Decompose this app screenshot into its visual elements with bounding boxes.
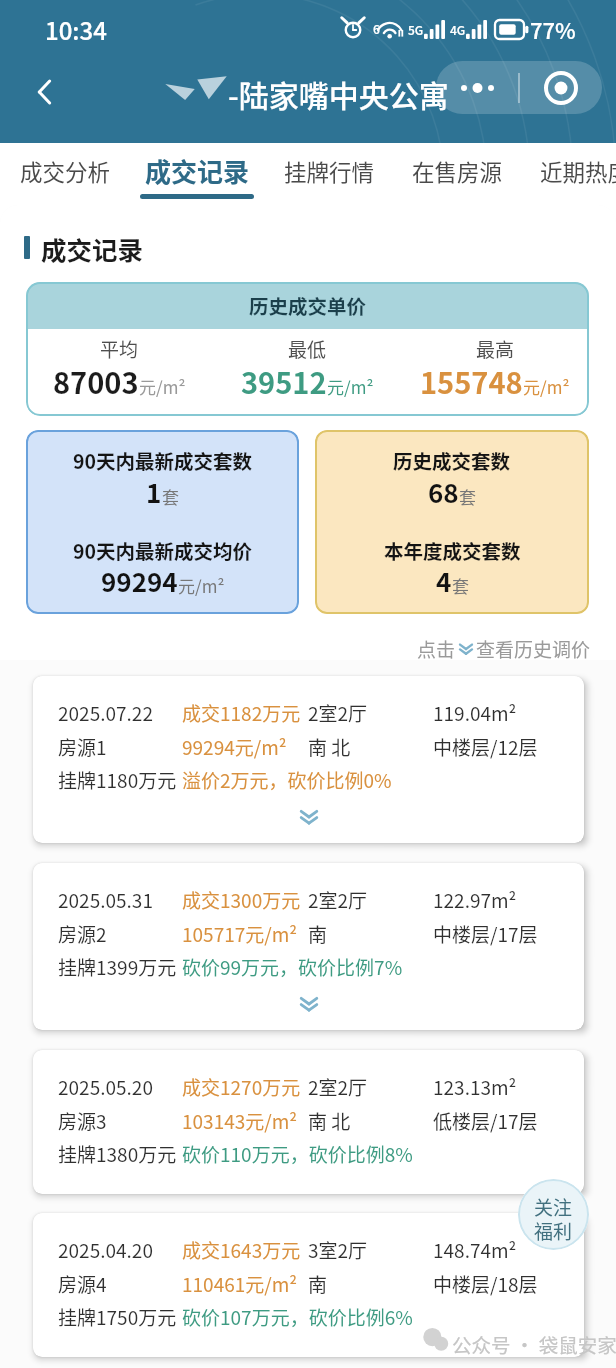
staticText: 房源4 — [58, 1270, 107, 1298]
staticText: 2025.07.22 — [58, 699, 153, 727]
staticText: 成交1643万元 — [182, 1236, 301, 1264]
staticText: 5G — [408, 21, 424, 38]
staticText: 成交记录 — [145, 152, 250, 190]
staticText: 套 — [459, 484, 476, 509]
staticText: 10:34 — [45, 12, 107, 47]
staticText: 套 — [162, 484, 179, 509]
staticText: 历史成交单价 — [249, 291, 367, 319]
button[interactable]: 2025.04.20 — [33, 1213, 584, 1357]
staticText: 2室2厅 — [308, 886, 368, 914]
button[interactable] — [132, 143, 260, 205]
staticText: 南 北 — [308, 1107, 351, 1135]
staticText: 68 — [428, 473, 459, 511]
button[interactable]: More options — [436, 61, 518, 114]
staticText: 成交分析 — [20, 155, 111, 188]
staticText: 元/m² — [523, 374, 570, 399]
staticText: 低楼层/17层 — [433, 1107, 538, 1135]
staticText: 148.74m² — [433, 1236, 517, 1264]
staticText: 成交1182万元 — [182, 699, 301, 727]
staticText: 2室2厅 — [308, 1073, 368, 1101]
staticText: 在售房源 — [412, 155, 503, 188]
staticText: 3室2厅 — [308, 1236, 368, 1264]
staticText: 砍价107万元，砍价比例6% — [182, 1303, 413, 1331]
staticText: 近期热度 — [540, 155, 616, 188]
staticText: 122.97m² — [433, 886, 517, 914]
staticText: 挂牌1399万元 — [58, 953, 177, 981]
staticText: 关注 — [534, 1193, 573, 1221]
staticText: 元/m² — [178, 573, 225, 598]
staticText: 2室2厅 — [308, 699, 368, 727]
staticText: 中楼层/12层 — [433, 733, 538, 761]
staticText: 房源3 — [58, 1107, 107, 1135]
staticText: 1 — [146, 473, 162, 511]
button[interactable]: 关注 — [518, 1179, 589, 1250]
button[interactable]: Back — [16, 63, 74, 121]
staticText: 119.04m² — [433, 699, 517, 727]
staticText: 本年度成交套数 — [384, 536, 521, 564]
staticText: 挂牌1180万元 — [58, 766, 177, 794]
staticText: 2025.04.20 — [58, 1236, 153, 1264]
staticText: 套 — [452, 573, 469, 598]
staticText: 平均 — [100, 335, 139, 363]
staticText: 155748 — [420, 360, 523, 402]
staticText: 中楼层/18层 — [433, 1270, 538, 1298]
button[interactable] — [401, 143, 529, 205]
staticText: 77% — [530, 13, 576, 45]
staticText: -陆家嘴中央公寓 — [228, 72, 449, 115]
staticText: 挂牌1380万元 — [58, 1140, 177, 1168]
staticText: 福利 — [534, 1217, 573, 1245]
staticText: 99294 — [101, 562, 178, 600]
staticText: 成交1270万元 — [182, 1073, 301, 1101]
staticText: 90天内最新成交套数 — [73, 446, 253, 474]
staticText: 90天内最新成交均价 — [73, 536, 253, 564]
staticText: 4G — [450, 21, 466, 38]
staticText: 105717元/m² — [182, 920, 298, 948]
staticText: 87003 — [53, 360, 139, 402]
staticText: 39512 — [241, 360, 327, 402]
staticText: 110461元/m² — [182, 1270, 298, 1298]
staticText: 南 北 — [308, 733, 351, 761]
button[interactable] — [530, 143, 616, 205]
staticText: 最高 — [476, 335, 515, 363]
staticText: 公众号 · 袋鼠安家 — [452, 1330, 616, 1358]
staticText: 房源1 — [58, 733, 107, 761]
button[interactable] — [8, 143, 132, 205]
staticText: 砍价110万元，砍价比例8% — [182, 1140, 413, 1168]
button[interactable] — [272, 143, 400, 205]
button[interactable]: 历史成交套数 — [315, 430, 589, 614]
button[interactable]: 2025.05.31 — [33, 863, 584, 1030]
staticText: 溢价2万元，砍价比例0% — [182, 766, 392, 794]
staticText: 南 — [308, 1270, 328, 1298]
staticText: 最低 — [288, 335, 327, 363]
staticText: 123.13m² — [433, 1073, 517, 1101]
staticText: 元/m² — [327, 374, 374, 399]
staticText: 成交记录 — [41, 230, 144, 267]
button[interactable]: 90天内最新成交套数 — [26, 430, 299, 614]
staticText: 房源2 — [58, 920, 107, 948]
staticText: 点击 — [417, 635, 456, 663]
staticText: 4 — [436, 562, 452, 600]
staticText: 元/m² — [139, 374, 186, 399]
staticText: 砍价99万元，砍价比例7% — [182, 953, 403, 981]
button[interactable]: 2025.05.20 — [33, 1050, 584, 1194]
staticText: 查看历史调价 — [476, 635, 591, 663]
staticText: 2025.05.31 — [58, 886, 153, 914]
staticText: 南 — [308, 920, 328, 948]
button[interactable]: Mini program menu — [520, 61, 602, 114]
staticText: 6 — [373, 20, 380, 37]
staticText: 挂牌行情 — [284, 155, 375, 188]
button[interactable]: 2025.07.22 — [33, 676, 584, 843]
staticText: 历史成交套数 — [393, 446, 511, 474]
staticText: 中楼层/17层 — [433, 920, 538, 948]
button[interactable]: 点击 — [417, 631, 616, 667]
staticText: 成交1300万元 — [182, 886, 301, 914]
staticText: 99294元/m² — [182, 733, 287, 761]
staticText: 103143元/m² — [182, 1107, 298, 1135]
staticText: 挂牌1750万元 — [58, 1303, 177, 1331]
staticText: 2025.05.20 — [58, 1073, 153, 1101]
